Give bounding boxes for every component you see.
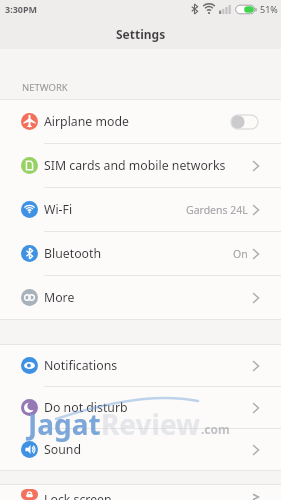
button[interactable]: More [0, 276, 281, 319]
staticText: Bluetooth [44, 245, 102, 262]
staticText: .com [201, 421, 230, 437]
button[interactable]: Do not disturb [0, 387, 281, 428]
staticText: Wi-Fi [44, 201, 73, 218]
staticText: On [233, 247, 248, 261]
staticText: More [44, 289, 75, 306]
staticText: 51% [260, 3, 278, 15]
button[interactable]: Airplane mode [0, 100, 281, 143]
button[interactable]: SIM cards and mobile networks [0, 144, 281, 187]
button[interactable]: Sound [0, 429, 281, 470]
button[interactable]: Lock screen [0, 485, 281, 500]
staticText: Lock screen [44, 491, 112, 500]
staticText: Sound [44, 441, 81, 458]
staticText: Airplane mode [44, 113, 129, 130]
staticText: NETWORK [22, 81, 68, 94]
staticText: Review [101, 405, 201, 443]
button[interactable]: Settings [0, 18, 281, 49]
staticText: Do not disturb [44, 399, 128, 416]
staticText: Gardens 24L [186, 203, 248, 217]
button[interactable]: Notifications [0, 345, 281, 386]
staticText: 3:30PM [5, 3, 38, 15]
staticText: SIM cards and mobile networks [44, 157, 226, 174]
staticText: Settings [116, 26, 166, 42]
button[interactable]: Bluetooth [0, 232, 281, 275]
staticText: Notifications [44, 357, 118, 374]
button[interactable]: Wi-Fi [0, 188, 281, 231]
staticText: Jagat [28, 405, 101, 443]
